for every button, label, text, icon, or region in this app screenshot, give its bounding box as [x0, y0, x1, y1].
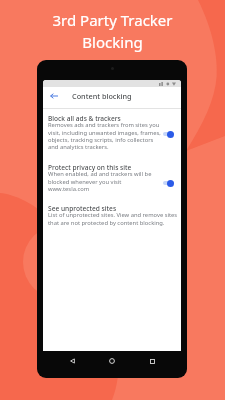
staticText: Block all ads & trackers [48, 114, 121, 123]
button[interactable]: Home [105, 354, 119, 368]
staticText: Protect privacy on this site [48, 163, 132, 172]
button[interactable]: See unprotected sites [43, 204, 181, 228]
staticText: 3rd Party Tracker [52, 10, 173, 30]
staticText: Removes ads and trackers from sites you … [48, 121, 164, 150]
staticText: When enabled, ad and trackers will be bl… [48, 170, 164, 192]
button[interactable]: Back [65, 354, 79, 368]
button[interactable]: Recent apps [145, 354, 159, 368]
staticText: See unprotected sites [48, 204, 117, 213]
staticText: Blocking [82, 32, 143, 52]
staticText: List of unprotected sites. View and remo… [48, 211, 180, 226]
button[interactable]: Back [46, 89, 62, 103]
button[interactable]: Protect privacy on this site [43, 163, 181, 194]
button[interactable]: Block all ads & trackers [43, 114, 181, 152]
staticText: Content blocking [72, 91, 132, 101]
